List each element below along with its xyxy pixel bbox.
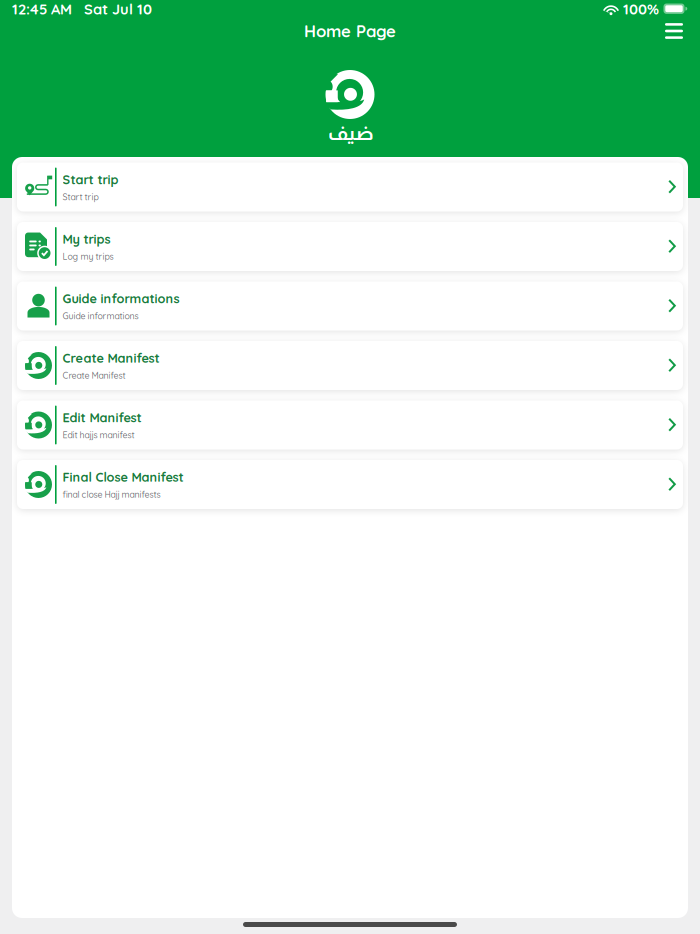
staticText: Guide informations <box>63 310 139 321</box>
staticText: Create Manifest <box>63 370 126 381</box>
staticText: Edit hajjs manifest <box>63 429 135 440</box>
button[interactable]: Start trip <box>17 162 683 211</box>
staticText: Sat Jul 10 <box>72 0 152 18</box>
staticText: Edit Manifest <box>63 410 142 425</box>
staticText: Log my trips <box>63 251 114 262</box>
button[interactable]: Edit Manifest <box>17 400 683 449</box>
button[interactable]: My trips <box>17 222 683 271</box>
button[interactable]: Guide informations <box>17 281 683 330</box>
staticText: final close Hajj manifests <box>63 489 161 500</box>
staticText: 12:45 AM <box>12 0 72 18</box>
button[interactable]: Final Close Manifest <box>17 460 683 509</box>
staticText: 100% <box>619 0 663 18</box>
staticText: Home Page <box>304 21 396 41</box>
staticText: Guide informations <box>63 291 180 306</box>
staticText: Create Manifest <box>63 350 160 366</box>
button[interactable]: Menu <box>658 17 690 45</box>
staticText: My trips <box>63 231 111 247</box>
staticText: Start trip <box>63 191 99 202</box>
staticText: Final Close Manifest <box>63 469 184 485</box>
button[interactable]: Create Manifest <box>17 341 683 390</box>
staticText: Start trip <box>63 172 119 187</box>
staticText: ضيف <box>327 122 373 144</box>
